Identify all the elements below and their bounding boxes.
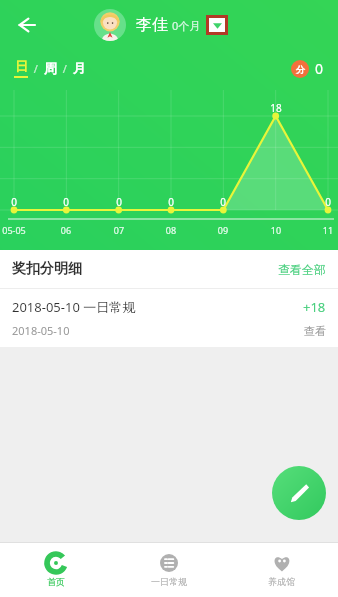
button[interactable]: Add record xyxy=(272,466,326,520)
staticText: 李佳 xyxy=(136,15,168,35)
staticText: / xyxy=(28,61,44,76)
button[interactable]: 2018-05-10 一日常规 xyxy=(0,289,338,347)
staticText: 2018-05-10 一日常规 xyxy=(12,298,136,316)
staticText: 0 xyxy=(321,195,335,209)
staticText: 查看全部 xyxy=(278,262,326,277)
staticText: 11 xyxy=(312,224,338,236)
staticText: 0 xyxy=(315,59,324,78)
staticText: 0 xyxy=(112,195,126,209)
staticText: 一日常规 xyxy=(151,576,187,587)
staticText: 0 xyxy=(59,195,73,209)
staticText: 0 xyxy=(216,195,230,209)
staticText: 08 xyxy=(155,224,187,236)
button[interactable]: 养成馆 xyxy=(225,543,338,597)
staticText: 05-05 xyxy=(0,224,30,236)
staticText: 2018-05-10 xyxy=(12,323,70,338)
button[interactable]: 一日常规 xyxy=(112,543,225,597)
staticText: 周 xyxy=(44,60,57,76)
button[interactable]: 查看全部 xyxy=(278,262,326,277)
button[interactable]: Switch child xyxy=(209,18,225,32)
staticText: 09 xyxy=(207,224,239,236)
button[interactable]: 月 xyxy=(73,60,86,76)
staticText: 06 xyxy=(50,224,82,236)
staticText: 分 xyxy=(296,64,305,75)
staticText: 0 xyxy=(164,195,178,209)
button[interactable]: 周 xyxy=(44,60,57,76)
staticText: 0 xyxy=(7,195,21,209)
staticText: 18 xyxy=(269,101,283,115)
button[interactable]: 首页 xyxy=(0,543,112,597)
staticText: 07 xyxy=(103,224,135,236)
staticText: 10 xyxy=(260,224,292,236)
staticText: 养成馆 xyxy=(268,576,295,587)
staticText: +18 xyxy=(303,298,326,316)
staticText: 查看 xyxy=(304,324,326,338)
staticText: / xyxy=(57,61,73,76)
staticText: 月 xyxy=(73,60,86,76)
staticText: 0个月 xyxy=(172,18,201,33)
staticText: 奖扣分明细 xyxy=(12,260,82,278)
staticText: 首页 xyxy=(47,576,65,587)
button[interactable]: 分 xyxy=(291,59,324,78)
button[interactable]: Back xyxy=(6,5,46,45)
button[interactable]: 日 xyxy=(14,58,28,78)
staticText: 日 xyxy=(15,58,28,74)
